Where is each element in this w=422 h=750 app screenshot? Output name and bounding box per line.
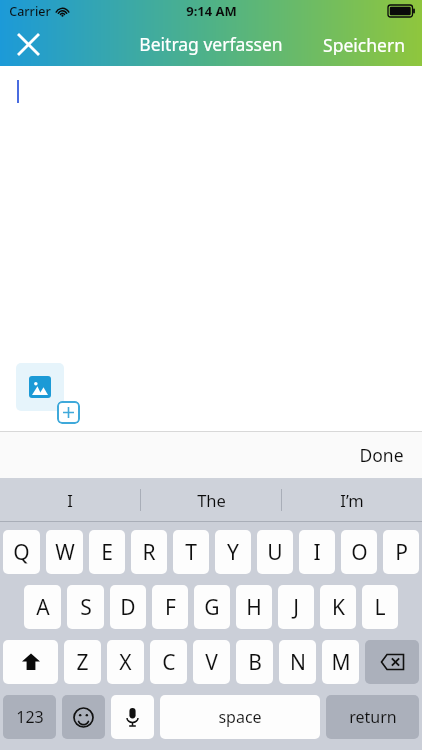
button[interactable]: K xyxy=(320,585,356,629)
staticText: B xyxy=(248,648,262,677)
button[interactable]: B xyxy=(236,640,273,684)
button[interactable]: I xyxy=(0,478,140,522)
staticText: I xyxy=(313,538,321,567)
staticText: F xyxy=(165,593,176,622)
staticText: G xyxy=(204,593,220,622)
staticText: E xyxy=(101,538,113,567)
button[interactable]: S xyxy=(67,585,104,629)
staticText: H xyxy=(246,593,262,622)
button[interactable]: Emoji xyxy=(62,695,105,739)
staticText: A xyxy=(36,593,50,622)
staticText: return xyxy=(349,706,397,728)
button[interactable]: space xyxy=(160,695,320,739)
button[interactable]: T xyxy=(173,530,209,574)
staticText: Y xyxy=(227,538,239,567)
button[interactable]: C xyxy=(150,640,187,684)
button[interactable]: 123 xyxy=(3,695,56,739)
staticText: U xyxy=(267,538,283,567)
button[interactable]: Diktieren xyxy=(111,695,154,739)
button[interactable]: U xyxy=(257,530,293,574)
button[interactable]: W xyxy=(46,530,83,574)
button[interactable]: A xyxy=(24,585,61,629)
staticText: P xyxy=(395,538,408,567)
button[interactable]: Speichern xyxy=(306,22,422,66)
staticText: R xyxy=(142,538,156,567)
staticText: T xyxy=(185,538,197,567)
button[interactable]: J xyxy=(278,585,314,629)
staticText: K xyxy=(332,593,345,622)
staticText: C xyxy=(162,648,176,677)
staticText: I’m xyxy=(340,489,364,511)
button[interactable]: N xyxy=(279,640,316,684)
staticText: W xyxy=(55,538,75,567)
button[interactable]: Umschalt xyxy=(3,640,58,684)
button[interactable]: Bild anhängen xyxy=(16,363,64,411)
button[interactable]: I xyxy=(299,530,335,574)
staticText: V xyxy=(205,648,218,677)
staticText: Speichern xyxy=(323,33,405,55)
button[interactable]: Z xyxy=(64,640,101,684)
button[interactable]: E xyxy=(89,530,125,574)
button[interactable]: Hinzufügen xyxy=(57,401,80,424)
button[interactable]: The xyxy=(141,478,281,522)
staticText: N xyxy=(290,648,306,677)
staticText: Done xyxy=(359,443,404,467)
staticText: The xyxy=(197,489,226,511)
staticText: 9:14 AM xyxy=(186,2,237,20)
staticText: Beitrag verfassen xyxy=(139,32,283,56)
staticText: S xyxy=(80,593,92,622)
button[interactable]: I’m xyxy=(282,478,422,522)
button[interactable]: R xyxy=(131,530,167,574)
button[interactable]: Schließen xyxy=(0,22,56,66)
staticText: Carrier xyxy=(9,3,51,20)
button[interactable]: V xyxy=(193,640,230,684)
button[interactable]: X xyxy=(107,640,144,684)
staticText: D xyxy=(120,593,136,622)
staticText: space xyxy=(218,706,262,728)
staticText: L xyxy=(374,593,386,622)
button[interactable]: Löschen xyxy=(365,640,419,684)
button[interactable]: return xyxy=(326,695,419,739)
staticText: I xyxy=(67,489,73,511)
button[interactable]: P xyxy=(383,530,419,574)
button[interactable]: Y xyxy=(215,530,251,574)
staticText: Q xyxy=(13,538,30,567)
button[interactable]: O xyxy=(341,530,377,574)
button[interactable]: H xyxy=(236,585,272,629)
button[interactable]: F xyxy=(152,585,188,629)
button[interactable]: G xyxy=(194,585,230,629)
button[interactable]: M xyxy=(322,640,359,684)
button[interactable]: Done xyxy=(341,433,422,477)
staticText: M xyxy=(331,648,351,677)
button[interactable]: L xyxy=(362,585,398,629)
staticText: J xyxy=(293,593,299,622)
staticText: Z xyxy=(76,648,89,677)
staticText: 123 xyxy=(16,706,44,728)
button[interactable]: D xyxy=(110,585,146,629)
button[interactable]: Q xyxy=(3,530,40,574)
staticText: X xyxy=(119,648,132,677)
staticText: O xyxy=(351,538,368,567)
